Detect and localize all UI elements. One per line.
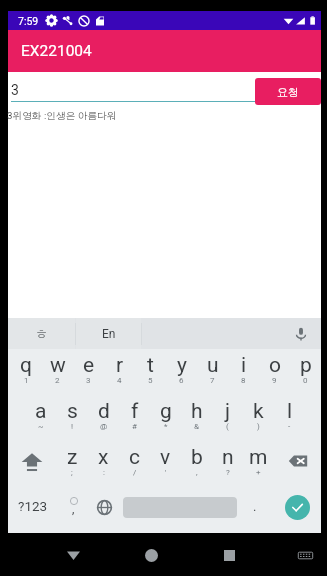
staticText: i — [241, 353, 247, 378]
staticText: c — [129, 445, 140, 470]
staticText: ㅎ — [35, 326, 48, 342]
button[interactable]: Backspace — [274, 441, 321, 487]
button[interactable]: EX221004 — [8, 30, 321, 72]
button[interactable]: Recents — [214, 540, 244, 570]
button[interactable]: j — [212, 395, 243, 441]
staticText: z — [67, 445, 78, 470]
staticText: y — [177, 353, 187, 378]
button[interactable]: u — [197, 349, 228, 395]
staticText: s — [67, 399, 78, 424]
staticText: 5 — [148, 376, 153, 385]
staticText: ' — [165, 468, 167, 477]
button[interactable]: Keyboard — [292, 542, 318, 568]
button[interactable]: q — [10, 349, 42, 395]
staticText: k — [253, 399, 264, 424]
button[interactable]: i — [228, 349, 259, 395]
button[interactable]: s — [57, 395, 88, 441]
staticText: , — [72, 502, 75, 516]
staticText: 2 — [55, 376, 60, 385]
staticText: u — [207, 353, 219, 378]
button[interactable]: e — [73, 349, 104, 395]
staticText: . — [253, 499, 257, 514]
button[interactable]: . — [240, 487, 269, 533]
button[interactable]: v — [150, 441, 181, 487]
staticText: * — [164, 422, 168, 431]
staticText: 9 — [272, 376, 277, 385]
button[interactable]: k — [243, 395, 274, 441]
staticText: d — [98, 399, 110, 424]
staticText: ( — [226, 422, 229, 431]
button[interactable]: Home — [136, 540, 166, 570]
button[interactable]: z — [56, 441, 88, 487]
button[interactable]: n — [212, 441, 243, 487]
staticText: b — [191, 445, 203, 470]
button[interactable]: m — [243, 441, 274, 487]
staticText: j — [225, 399, 231, 424]
button[interactable]: t — [135, 349, 166, 395]
staticText: ; — [71, 468, 73, 477]
staticText: x — [98, 445, 109, 470]
button[interactable]: Shift — [8, 441, 56, 487]
staticText: r — [116, 353, 124, 378]
staticText: 3위영화 :인생은 아름다워 — [7, 110, 117, 122]
staticText: + — [256, 468, 261, 477]
button[interactable]: En — [76, 318, 141, 349]
staticText: & — [194, 422, 199, 431]
staticText: ?123 — [18, 498, 48, 514]
staticText: n — [222, 445, 234, 470]
staticText: , — [196, 468, 198, 477]
staticText: g — [160, 399, 172, 424]
button[interactable]: l — [274, 395, 305, 441]
staticText: ) — [257, 422, 260, 431]
staticText: m — [249, 445, 268, 470]
button[interactable]: f — [119, 395, 150, 441]
staticText: f — [131, 399, 139, 424]
staticText: ! — [71, 422, 74, 431]
staticText: a — [35, 399, 47, 424]
button[interactable]: , — [58, 487, 89, 533]
button[interactable]: Change language — [89, 487, 120, 533]
staticText: p — [300, 353, 312, 378]
button[interactable]: ㅎ — [8, 318, 75, 349]
staticText: 7:59 — [18, 15, 39, 27]
staticText: 0 — [303, 376, 308, 385]
staticText: q — [20, 353, 32, 378]
button[interactable]: y — [166, 349, 197, 395]
staticText: 8 — [241, 376, 246, 385]
button[interactable]: Done — [269, 487, 321, 533]
staticText: En — [102, 327, 116, 341]
button[interactable]: Back — [58, 540, 88, 570]
staticText: 4 — [117, 376, 122, 385]
button[interactable]: h — [181, 395, 212, 441]
button[interactable]: x — [88, 441, 119, 487]
button[interactable]: p — [290, 349, 321, 395]
staticText: w — [50, 353, 66, 378]
staticText: @ — [100, 422, 108, 431]
staticText: 3 — [11, 82, 19, 98]
button[interactable]: g — [150, 395, 181, 441]
staticText: t — [147, 353, 154, 378]
staticText: 1 — [24, 376, 29, 385]
staticText: # — [132, 422, 137, 431]
staticText: 6 — [179, 376, 184, 385]
button[interactable]: r — [104, 349, 135, 395]
staticText: l — [287, 399, 293, 424]
button[interactable]: 요청 — [255, 78, 321, 105]
button[interactable]: Voice input — [290, 323, 312, 345]
button[interactable]: w — [42, 349, 73, 395]
button[interactable]: d — [88, 395, 119, 441]
button[interactable]: b — [181, 441, 212, 487]
staticText: 7 — [210, 376, 215, 385]
button[interactable]: a — [25, 395, 57, 441]
staticText: o — [269, 353, 281, 378]
staticText: - — [288, 422, 291, 431]
button[interactable]: c — [119, 441, 150, 487]
staticText: e — [83, 353, 95, 378]
button[interactable]: ?123 — [8, 487, 58, 533]
staticText: ? — [226, 468, 230, 477]
staticText: EX221004 — [21, 42, 92, 60]
staticText: 요청 — [277, 85, 299, 99]
staticText: v — [160, 445, 171, 470]
button[interactable]: o — [259, 349, 290, 395]
